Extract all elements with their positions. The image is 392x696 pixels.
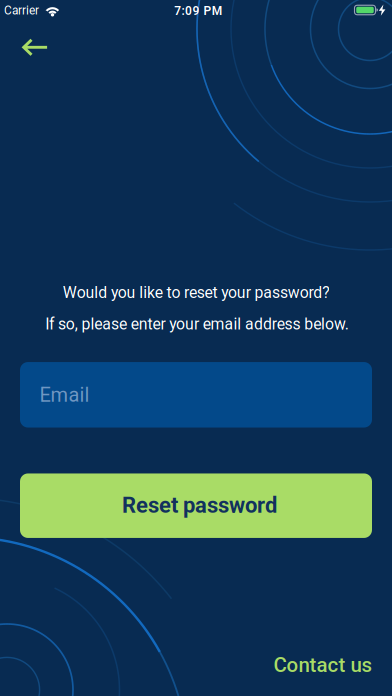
staticText: 7:09 PM [174,4,223,18]
button[interactable] [13,29,57,65]
button[interactable]: Email [20,362,372,428]
staticText: Carrier [4,3,39,17]
button[interactable]: Reset password [20,473,372,538]
staticText: Email [39,383,89,406]
staticText: Reset password [122,492,277,518]
staticText: Contact us [273,653,372,677]
staticText: Would you like to reset your password? [63,283,329,302]
button[interactable]: Contact us [273,653,372,677]
staticText: If so, please enter your email address b… [45,315,349,333]
